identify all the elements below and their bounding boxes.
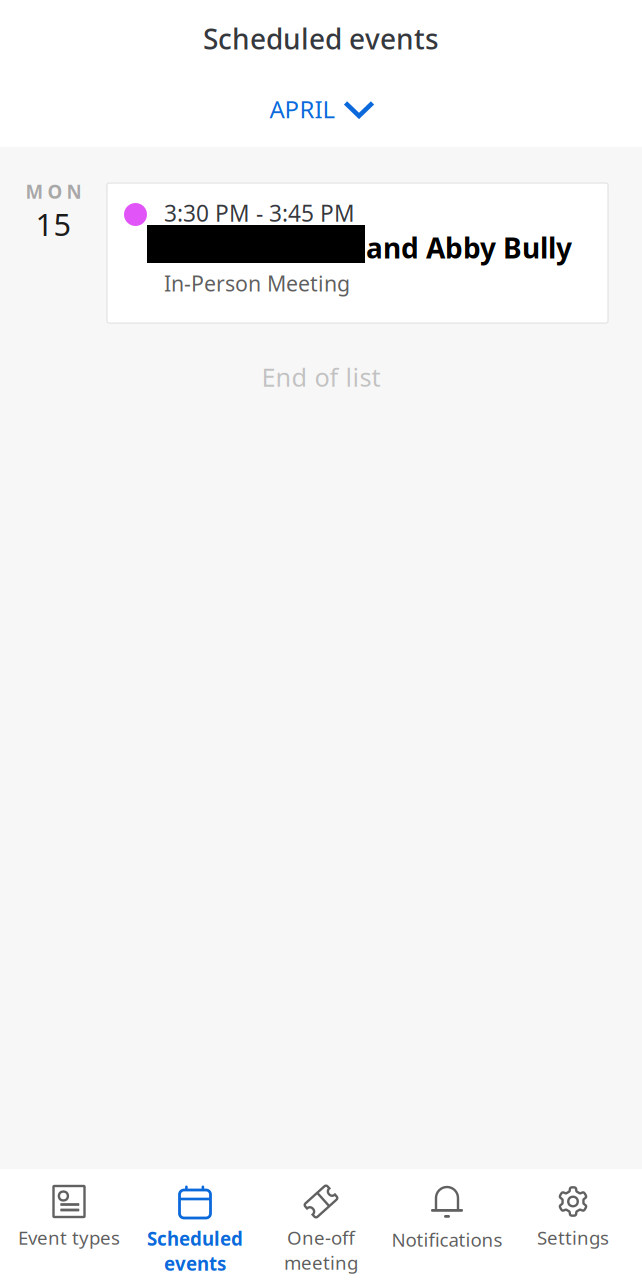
staticText: O bbox=[47, 179, 62, 204]
staticText: In-Person Meeting bbox=[164, 269, 350, 297]
button[interactable]: Scheduled bbox=[132, 1169, 258, 1280]
staticText: M bbox=[25, 179, 43, 204]
button[interactable]: Event types bbox=[6, 1169, 132, 1280]
staticText: and Abby Bully bbox=[366, 229, 572, 266]
staticText: APRIL bbox=[269, 93, 335, 125]
staticText: End of list bbox=[261, 360, 380, 394]
staticText: 15 bbox=[35, 204, 71, 244]
staticText: 3:30 PM - 3:45 PM bbox=[164, 198, 355, 228]
staticText: Settings bbox=[537, 1225, 609, 1250]
staticText: Notifications bbox=[391, 1227, 502, 1252]
staticText: meeting bbox=[284, 1250, 358, 1275]
staticText: N bbox=[66, 179, 81, 204]
button[interactable]: 3:30 PM - 3:45 PM bbox=[107, 147, 608, 323]
staticText: Scheduled events bbox=[203, 20, 439, 57]
button[interactable]: Settings bbox=[510, 1169, 636, 1280]
staticText: Scheduled bbox=[147, 1226, 243, 1251]
staticText: Event types bbox=[18, 1225, 120, 1250]
button[interactable]: Notifications bbox=[384, 1169, 510, 1280]
button[interactable]: One-off bbox=[258, 1169, 384, 1280]
button[interactable]: APRIL bbox=[249, 79, 392, 139]
staticText: events bbox=[164, 1251, 226, 1276]
staticText: One-off bbox=[287, 1225, 355, 1250]
